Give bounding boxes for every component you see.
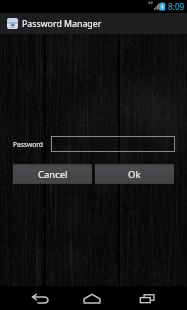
- staticText: Password Manager: [22, 18, 102, 30]
- button[interactable]: Recent apps: [119, 286, 175, 310]
- button[interactable]: Home: [64, 286, 120, 310]
- button[interactable]: Back: [12, 286, 68, 310]
- button[interactable]: [51, 136, 175, 152]
- other: App icon: [7, 18, 18, 29]
- staticText: Cancel: [38, 168, 68, 181]
- button[interactable]: Cancel: [13, 164, 92, 184]
- staticText: Ok: [128, 168, 141, 181]
- staticText: 8:09: [168, 1, 185, 12]
- button[interactable]: Ok: [95, 164, 174, 184]
- staticText: Password: [13, 140, 43, 149]
